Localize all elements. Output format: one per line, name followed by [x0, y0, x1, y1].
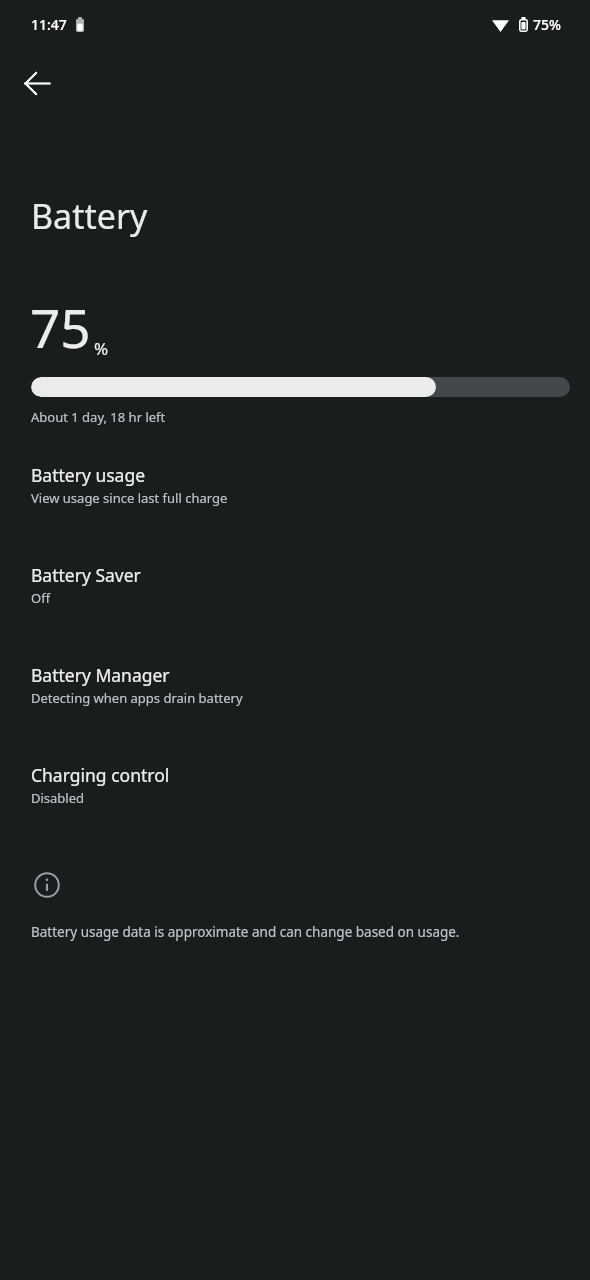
staticText: Battery usage data is approximate and ca… — [31, 923, 460, 941]
staticText: % — [94, 337, 109, 360]
staticText: Battery — [31, 193, 148, 239]
button[interactable]: Battery Saver — [0, 559, 590, 659]
staticText: Battery Manager — [31, 663, 170, 687]
button[interactable]: Back — [9, 55, 65, 111]
button[interactable]: Charging control — [0, 759, 590, 859]
staticText: 75% — [533, 15, 561, 34]
staticText: Charging control — [31, 763, 170, 787]
staticText: Off — [31, 589, 51, 607]
staticText: 75 — [30, 291, 91, 363]
staticText: Disabled — [31, 789, 85, 807]
button[interactable]: Battery usage — [0, 459, 590, 559]
button[interactable]: Battery Manager — [0, 659, 590, 759]
staticText: About 1 day, 18 hr left — [31, 408, 166, 426]
staticText: View usage since last full charge — [31, 489, 228, 507]
staticText: Detecting when apps drain battery — [31, 689, 243, 707]
staticText: Battery Saver — [31, 563, 141, 587]
staticText: Battery usage — [31, 463, 146, 487]
staticText: 11:47 — [31, 15, 67, 34]
